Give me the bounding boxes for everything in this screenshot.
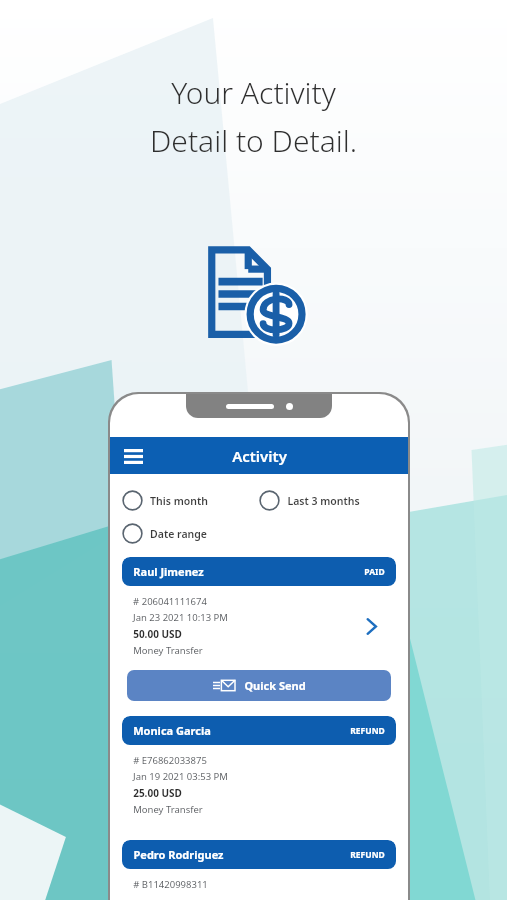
staticText: Money Transfer — [133, 803, 203, 816]
button[interactable]: Monica Garcia — [122, 716, 396, 829]
staticText: Your Activity — [171, 72, 336, 113]
staticText: Date range — [150, 527, 207, 541]
staticText: 25.00 USD — [133, 786, 182, 800]
button[interactable]: Last 3 months — [259, 486, 396, 515]
button[interactable]: Open navigation menu — [118, 441, 148, 471]
button[interactable]: This month — [122, 486, 259, 515]
staticText: # B11420998311 — [133, 878, 208, 891]
staticText: Last 3 months — [287, 494, 360, 508]
staticText: Pedro Rodriguez — [133, 847, 224, 862]
staticText: This month — [150, 494, 208, 508]
staticText: Money Transfer — [133, 644, 203, 657]
staticText: REFUND — [350, 725, 385, 737]
button[interactable]: Raul Jimenez — [122, 557, 396, 705]
staticText: # E76862033875 — [133, 754, 207, 767]
staticText: Quick Send — [244, 678, 306, 693]
staticText: PAID — [364, 566, 385, 578]
staticText: Jan 19 2021 03:53 PM — [133, 770, 228, 783]
staticText: Activity — [232, 446, 287, 466]
button[interactable]: View transaction details — [360, 615, 382, 637]
button[interactable]: Pedro Rodriguez — [122, 840, 396, 900]
staticText: REFUND — [350, 849, 385, 861]
button[interactable]: Quick Send — [127, 670, 391, 701]
staticText: Monica Garcia — [133, 723, 211, 738]
staticText: 50.00 USD — [133, 627, 182, 641]
staticText: # 206041111674 — [133, 595, 207, 608]
staticText: Detail to Detail. — [150, 120, 357, 161]
button[interactable]: Date range — [122, 519, 396, 548]
staticText: Jan 23 2021 10:13 PM — [133, 611, 228, 624]
staticText: Raul Jimenez — [133, 564, 204, 579]
